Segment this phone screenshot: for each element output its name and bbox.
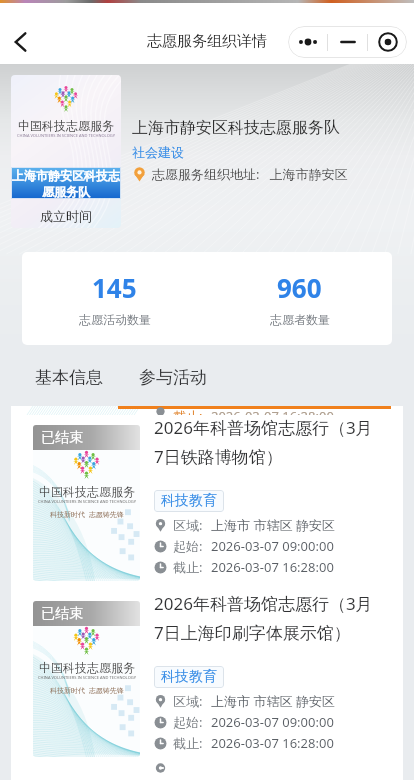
staticText: 960 (277, 270, 322, 305)
staticText: 科技新时代 志愿铸先锋 (50, 686, 124, 696)
staticText: 志愿服务组织地址: 上海市静安区 (152, 165, 348, 183)
staticText: 已结束 (41, 605, 83, 623)
staticText: 起始: (173, 713, 203, 731)
button[interactable]: Minimize (328, 26, 367, 58)
staticText: 科技新时代 志愿铸先锋 (50, 510, 124, 520)
staticText: 基本信息 (35, 367, 103, 388)
staticText: 上海市 市辖区 静安区 (211, 692, 335, 710)
button[interactable]: 中国科技志愿服务 (11, 415, 403, 591)
staticText: 成立时间 (40, 208, 92, 224)
staticText: 2026-03-07 09:00:00 (211, 713, 334, 731)
staticText: 起始: (173, 537, 203, 555)
button[interactable]: 中国科技志愿服务 (11, 767, 403, 780)
staticText: 145 (92, 270, 137, 305)
button[interactable]: More (288, 26, 327, 58)
staticText: 志愿服务组织详情 (147, 32, 267, 51)
staticText: CHINA VOLUNTEERS IN SCIENCE AND TECHNOLO… (38, 675, 136, 680)
staticText: 2026-03-07 16:28:00 (211, 558, 334, 576)
staticText: 2026-03-07 09:00:00 (211, 537, 334, 555)
staticText: 截止: (173, 734, 203, 752)
staticText: 截止: (173, 407, 203, 415)
staticText: 截止: (173, 558, 203, 576)
staticText: 志愿活动数量 (79, 312, 151, 327)
staticText: 中国科技志愿服务 (18, 118, 114, 133)
staticText: 科技教育 (161, 492, 217, 510)
staticText: 区域: (173, 516, 203, 534)
staticText: CHINA VOLUNTEERS IN SCIENCE AND TECHNOLO… (17, 133, 115, 138)
staticText: 上海市静安区科技志愿服务队 (132, 118, 340, 138)
staticText: 上海市静安区科技志愿服务队 (12, 168, 120, 198)
staticText: 区域: (173, 692, 203, 710)
button[interactable]: 中国科技志愿服务 (11, 591, 403, 767)
staticText: 参与活动 (139, 367, 207, 388)
staticText: 中国科技志愿服务 (39, 484, 135, 499)
staticText: 中国科技志愿服务 (39, 660, 135, 675)
button[interactable]: Back (0, 21, 42, 63)
staticText: 2026年科普场馆志愿行（3月7日铁路博物馆） (154, 416, 379, 468)
staticText: 2026-03-07 16:28:00 (211, 734, 334, 752)
button[interactable]: Close (368, 26, 407, 58)
staticText: 社会建设 (132, 144, 184, 160)
staticText: 上海市 市辖区 静安区 (211, 516, 335, 534)
button[interactable]: 参与活动 (139, 359, 207, 396)
button[interactable]: 960 (207, 252, 392, 345)
staticText: CHINA VOLUNTEERS IN SCIENCE AND TECHNOLO… (38, 499, 136, 504)
button[interactable]: 基本信息 (35, 359, 103, 396)
button[interactable]: 145 (22, 252, 207, 345)
staticText: 科技教育 (161, 668, 217, 686)
staticText: 2026-03-07 16:28:00 (211, 407, 334, 415)
staticText: 志愿者数量 (270, 312, 330, 327)
staticText: 2026年科普场馆志愿行（3月7日上海印刷字体展示馆） (154, 592, 379, 644)
button[interactable]: 中国科技志愿服务 (11, 75, 121, 228)
staticText: 已结束 (41, 429, 83, 447)
